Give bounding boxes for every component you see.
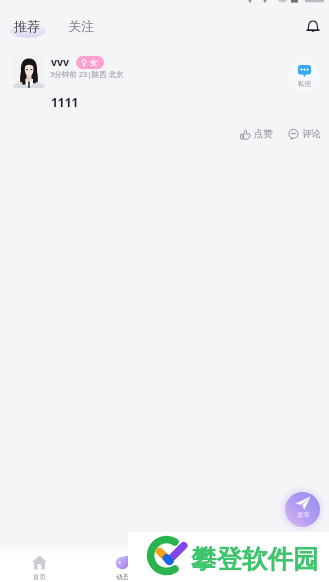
button[interactable]: 消息	[165, 553, 247, 582]
staticText: 发布	[297, 511, 310, 519]
button[interactable]: vvv	[51, 55, 104, 69]
staticText: 关注	[68, 18, 94, 34]
staticText: 女	[90, 58, 98, 67]
button[interactable]: 通知	[301, 14, 325, 38]
button[interactable]: 点赞	[238, 126, 275, 142]
staticText: 1111	[51, 94, 79, 110]
button[interactable]: 关注	[54, 16, 108, 39]
button[interactable]: 我的	[247, 553, 329, 582]
button[interactable]: 发布	[285, 492, 320, 527]
button[interactable]: 私信	[288, 61, 320, 93]
staticText: 评论	[302, 128, 321, 140]
button[interactable]: 首页	[0, 553, 83, 582]
button[interactable]: 推荐	[0, 16, 54, 39]
button[interactable]: 头像	[13, 56, 45, 88]
staticText: 动态	[116, 573, 129, 581]
staticText: 私信	[298, 80, 311, 88]
staticText: 首页	[33, 573, 46, 581]
staticText: 攀登软件园	[191, 543, 319, 575]
staticText: 3分钟前 23|陕西 北京	[50, 69, 124, 79]
staticText: vvv	[51, 55, 69, 69]
button[interactable]: 评论	[286, 126, 323, 142]
button[interactable]: 动态	[83, 553, 165, 582]
staticText: 点赞	[254, 128, 273, 140]
staticText: 推荐	[14, 18, 40, 34]
